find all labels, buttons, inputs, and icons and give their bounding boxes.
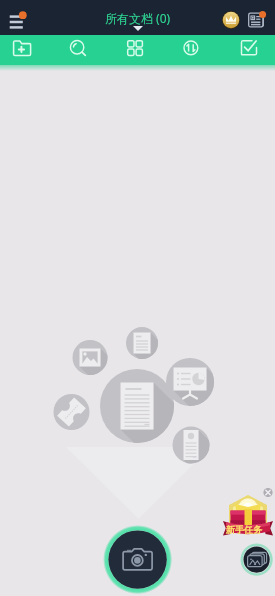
button[interactable]: Search bbox=[61, 33, 95, 63]
button[interactable]: VIP bbox=[222, 11, 240, 29]
button[interactable]: Newbie task bbox=[223, 494, 273, 540]
staticText: 新手任务 bbox=[226, 524, 262, 535]
button[interactable]: Menu bbox=[4, 8, 30, 34]
button[interactable]: New folder bbox=[5, 33, 39, 63]
button[interactable]: Select bbox=[232, 33, 266, 63]
button[interactable]: 所有文档 (0) bbox=[105, 10, 171, 31]
button[interactable]: Sort bbox=[174, 33, 208, 63]
button[interactable]: Close bbox=[260, 484, 275, 501]
button[interactable]: Camera bbox=[103, 525, 173, 595]
staticText: 所有文档 (0) bbox=[105, 10, 171, 26]
button[interactable]: News bbox=[248, 12, 266, 30]
button[interactable]: Grid view bbox=[118, 33, 152, 63]
button[interactable]: Gallery bbox=[240, 543, 274, 577]
